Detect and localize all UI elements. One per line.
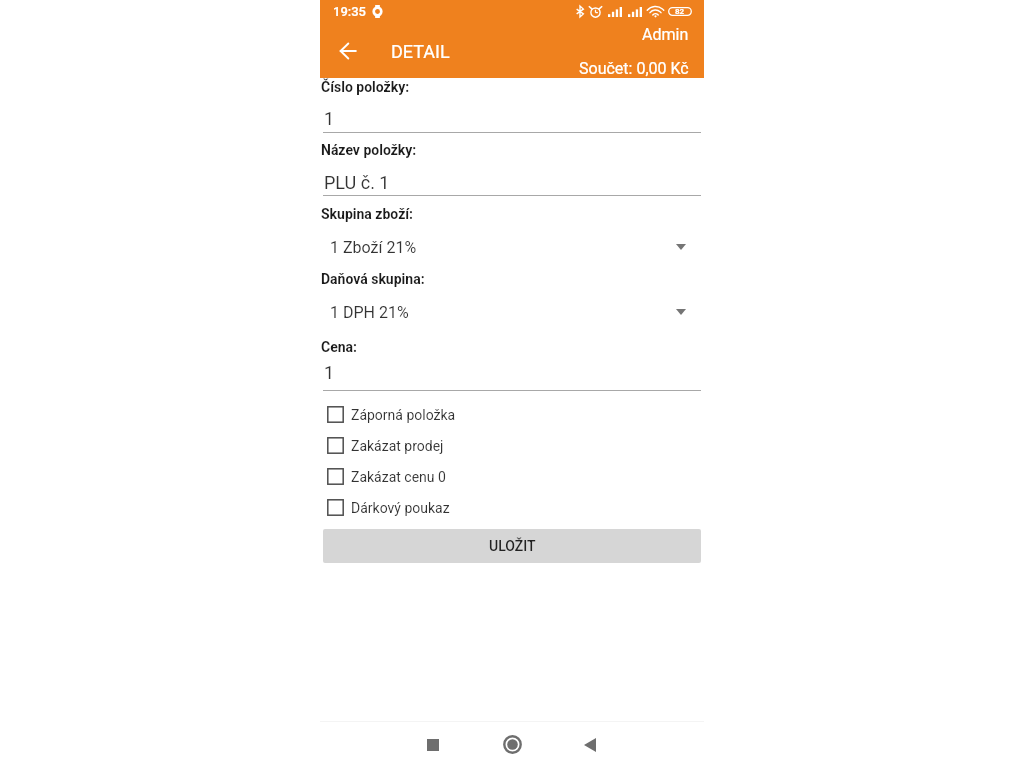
- staticText: DETAIL: [391, 41, 450, 62]
- staticText: 1: [324, 362, 335, 383]
- staticText: Název položky:: [321, 142, 417, 158]
- staticText: Dárkový poukaz: [351, 500, 450, 516]
- button[interactable]: Back: [330, 33, 366, 69]
- button[interactable]: 1 Zboží 21%: [320, 231, 704, 263]
- staticText: 1 Zboží 21%: [330, 238, 417, 257]
- staticText: Daňová skupina:: [321, 271, 425, 287]
- staticText: ULOŽIT: [489, 538, 536, 554]
- button[interactable]: Home: [490, 721, 535, 766]
- staticText: Zakázat cenu 0: [351, 469, 446, 485]
- staticText: 82: [675, 7, 685, 16]
- button[interactable]: Zakázat cenu 0: [320, 461, 704, 492]
- staticText: Zakázat prodej: [351, 438, 444, 454]
- button[interactable]: Zakázat prodej: [320, 430, 704, 461]
- button[interactable]: Back: [567, 721, 612, 766]
- staticText: Součet: 0,00 Kč: [579, 59, 689, 78]
- staticText: Záporná položka: [351, 407, 456, 423]
- button[interactable]: 1 DPH 21%: [320, 296, 704, 328]
- button[interactable]: Záporná položka: [320, 399, 704, 430]
- staticText: Cena:: [321, 339, 358, 355]
- button[interactable]: ULOŽIT: [323, 529, 701, 563]
- staticText: PLU č. 1: [324, 172, 390, 193]
- staticText: Číslo položky:: [321, 79, 410, 95]
- staticText: Skupina zboží:: [321, 206, 414, 222]
- button[interactable]: Recent apps: [410, 721, 455, 766]
- staticText: 19:35: [333, 4, 366, 19]
- button[interactable]: Dárkový poukaz: [320, 492, 704, 523]
- staticText: 1 DPH 21%: [330, 303, 409, 322]
- staticText: 1: [324, 108, 335, 129]
- staticText: Admin: [642, 25, 689, 44]
